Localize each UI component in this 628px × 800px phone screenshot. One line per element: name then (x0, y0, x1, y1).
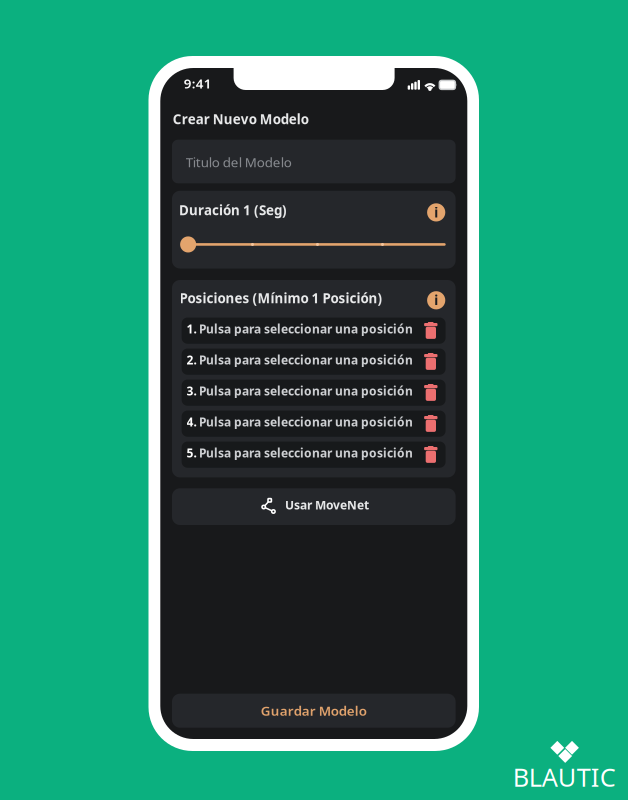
staticText: Pulsa para seleccionar una posición (199, 383, 413, 399)
staticText: Titulo del Modelo (186, 153, 292, 171)
staticText: Posiciones (Mínimo 1 Posición) (179, 289, 382, 307)
button[interactable]: Guardar Modelo (172, 694, 456, 728)
staticText: Pulsa para seleccionar una posición (199, 321, 413, 337)
staticText: 5. (187, 445, 197, 461)
staticText: Duración 1 (Seg) (179, 201, 287, 219)
staticText: Usar MoveNet (285, 497, 369, 513)
button[interactable]: Información (427, 203, 445, 221)
button[interactable]: Información (427, 291, 445, 309)
staticText: 9:41 (184, 74, 212, 92)
staticText: i (434, 291, 438, 309)
button[interactable]: Titulo del Modelo (172, 140, 456, 183)
staticText: BLAUTIC (513, 760, 616, 794)
button[interactable]: 4. (182, 410, 446, 437)
staticText: Pulsa para seleccionar una posición (199, 445, 413, 461)
button[interactable]: 3. (182, 379, 446, 406)
staticText: i (434, 203, 438, 221)
staticText: Pulsa para seleccionar una posición (199, 352, 413, 368)
staticText: 4. (187, 414, 197, 430)
button[interactable]: 2. (182, 348, 446, 375)
button[interactable]: Usar MoveNet (172, 488, 456, 525)
button[interactable]: 5. (182, 441, 446, 468)
staticText: 2. (187, 352, 197, 368)
staticText: 3. (187, 383, 197, 399)
staticText: Pulsa para seleccionar una posición (199, 414, 413, 430)
staticText: 1. (187, 321, 197, 337)
staticText: Crear Nuevo Modelo (173, 110, 309, 128)
button[interactable]: 1. (182, 317, 446, 344)
staticText: Guardar Modelo (261, 702, 367, 719)
